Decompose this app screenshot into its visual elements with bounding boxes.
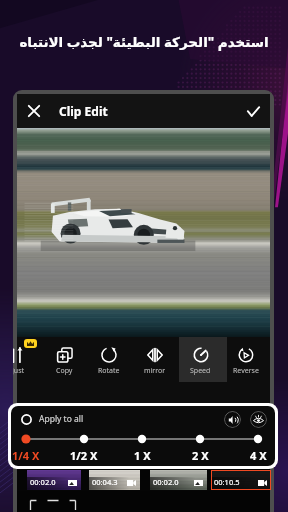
staticText: 00:02.0 — [30, 477, 56, 487]
staticText: استخدم "الحركة البطيئة" لجذب الانتباه — [19, 33, 269, 51]
button[interactable]: Close — [17, 94, 51, 128]
staticText: 1/2 X — [70, 448, 98, 463]
staticText: Reverse — [233, 366, 259, 376]
staticText: 00:10.5 — [214, 477, 240, 487]
button[interactable]: Apply to all — [21, 414, 32, 425]
staticText: Apply to all — [39, 413, 84, 425]
staticText: Speed — [190, 366, 211, 376]
button[interactable]: 1/2 X — [60, 448, 108, 463]
button[interactable]: 00:04.3 — [89, 470, 140, 490]
button[interactable]: 1 X — [118, 448, 166, 463]
button[interactable]: Reverse — [223, 337, 269, 382]
button[interactable]: just — [13, 337, 41, 382]
staticText: 4 X — [250, 448, 267, 463]
staticText: 00:04.3 — [92, 477, 118, 487]
button[interactable]: Volume — [224, 411, 241, 428]
button[interactable]: 4 X — [234, 448, 275, 463]
staticText: just — [13, 366, 25, 376]
staticText: Copy — [56, 366, 73, 376]
staticText: 2 X — [192, 448, 209, 463]
staticText: mirror — [144, 366, 166, 376]
staticText: 1/4 X — [12, 448, 40, 463]
button[interactable]: Confirm — [236, 94, 270, 128]
button[interactable]: 00:10.5 — [211, 470, 271, 490]
button[interactable]: Copy — [41, 337, 87, 382]
staticText: 00:02.0 — [153, 477, 179, 487]
button[interactable]: Clip Edit — [59, 103, 108, 119]
button[interactable]: 00:02.0 — [150, 470, 207, 490]
button[interactable]: mirror — [132, 337, 178, 382]
staticText: Rotate — [98, 366, 120, 376]
button[interactable]: Speed — [177, 337, 223, 382]
button[interactable]: Smooth — [250, 411, 267, 428]
button[interactable]: 2 X — [176, 448, 224, 463]
button[interactable]: 1/4 X — [11, 448, 50, 463]
button[interactable]: 00:02.0 — [27, 470, 81, 490]
staticText: 1 X — [134, 448, 151, 463]
button[interactable]: Rotate — [86, 337, 132, 382]
